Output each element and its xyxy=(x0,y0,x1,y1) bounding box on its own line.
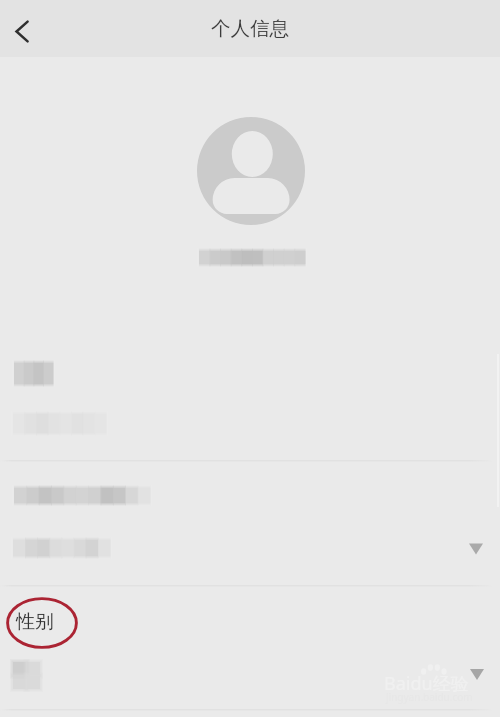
button[interactable]: Nickname xyxy=(185,243,319,273)
button[interactable]: Region xyxy=(0,461,500,585)
button[interactable]: Back xyxy=(0,8,46,55)
staticText: 性别 xyxy=(16,610,54,634)
button[interactable]: Account name xyxy=(0,345,500,460)
staticText: 个人信息 xyxy=(211,16,289,41)
button[interactable]: 性别 xyxy=(0,586,500,709)
button[interactable]: Expand xyxy=(462,536,490,562)
button[interactable]: Change profile photo xyxy=(197,117,305,225)
